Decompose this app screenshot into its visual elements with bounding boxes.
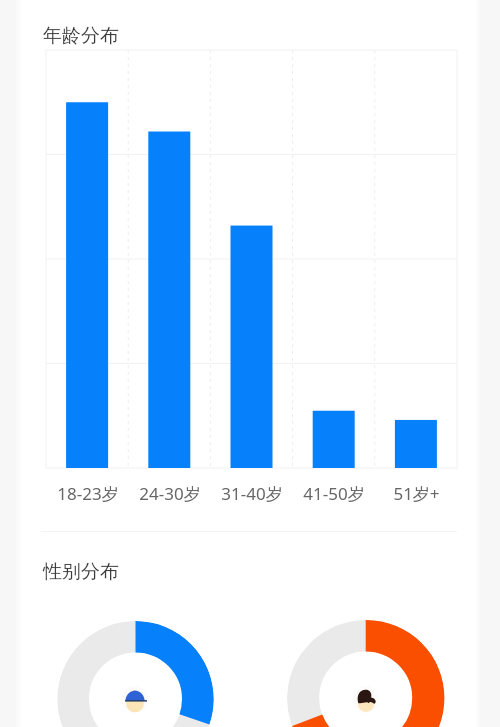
button[interactable]: 女性占比 69% <box>287 620 445 727</box>
button[interactable]: 41-50岁 <box>293 482 375 504</box>
button[interactable]: 31-40岁 <box>211 482 293 504</box>
staticText: 年龄分布 <box>43 24 119 48</box>
button[interactable]: 性别分布 <box>41 558 121 586</box>
staticText: 性别分布 <box>43 560 119 584</box>
button[interactable]: 年龄分布 <box>41 22 121 50</box>
staticText: 24-30岁 <box>139 482 201 504</box>
staticText: 41-50岁 <box>303 482 365 504</box>
button[interactable]: 24-30岁 <box>129 482 211 504</box>
staticText: 51岁+ <box>393 482 440 504</box>
button[interactable]: 51岁+ <box>375 482 457 504</box>
button[interactable]: 男性占比 30% <box>57 621 214 727</box>
staticText: 18-23岁 <box>57 482 119 504</box>
button[interactable]: 年龄分布柱状图 <box>46 50 457 468</box>
staticText: 31-40岁 <box>221 482 283 504</box>
button[interactable]: 18-23岁 <box>46 482 129 504</box>
